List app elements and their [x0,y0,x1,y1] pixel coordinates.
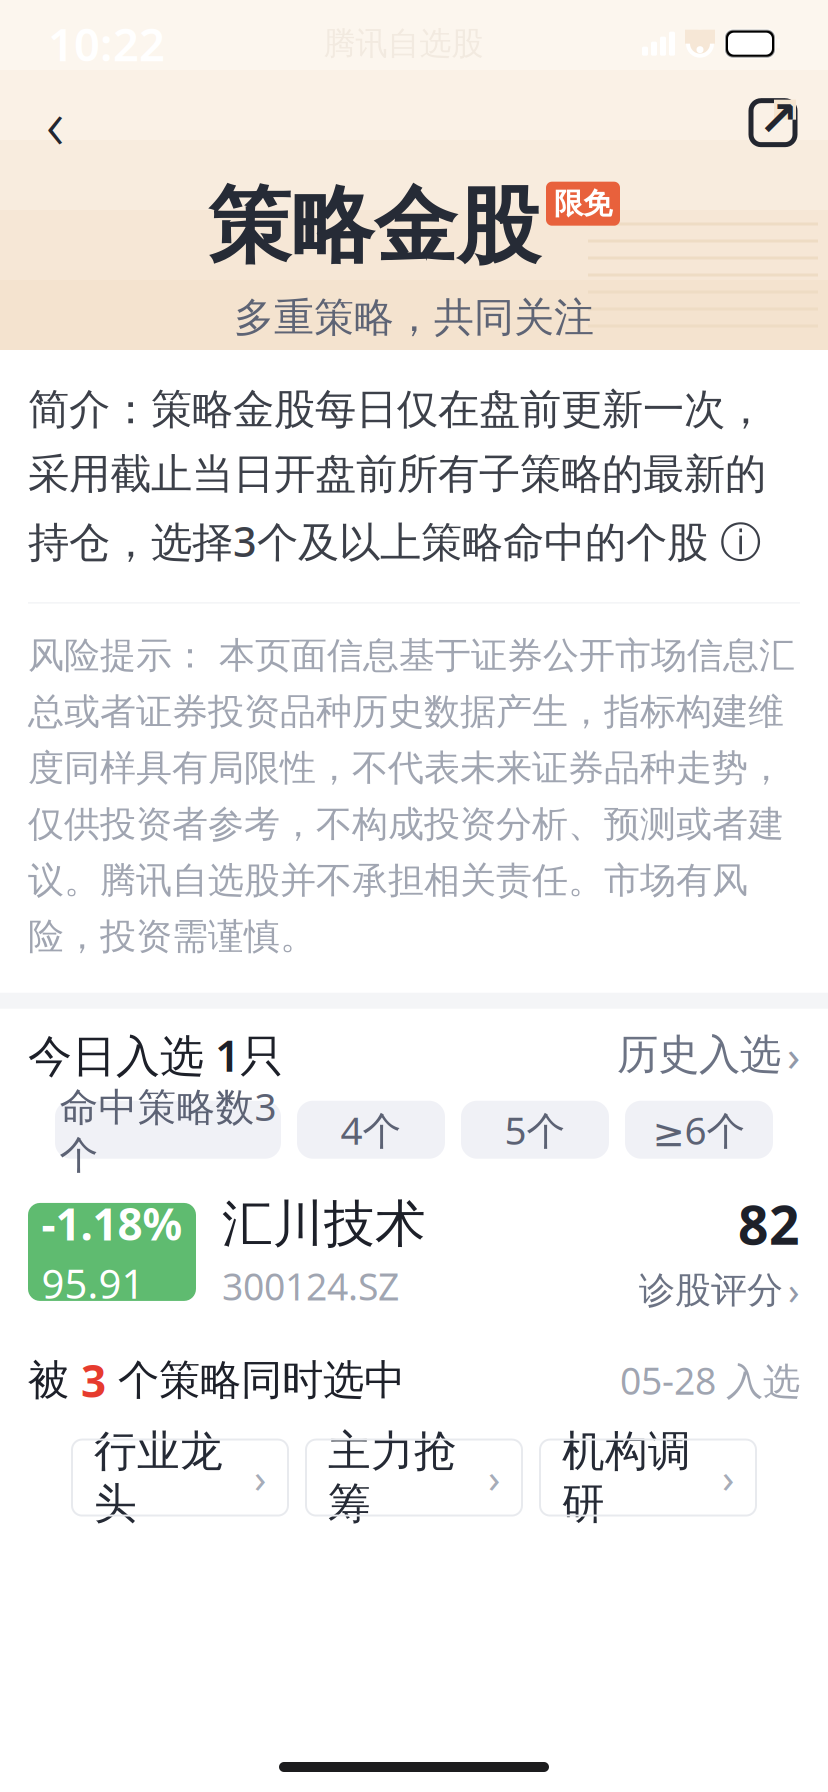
staticText: 汇川技术 [222,1193,426,1255]
staticText: 机构调研 [562,1425,691,1530]
staticText: › [788,1266,800,1315]
button[interactable]: 分享 [738,88,808,158]
staticText: 历史入选 [617,1029,781,1080]
staticText: ↗ [758,91,798,146]
staticText: 05-28 入选 [620,1356,800,1405]
staticText: 限免 [554,186,612,222]
staticText: 诊股评分 [639,1268,783,1312]
staticText: 82 [738,1189,800,1259]
staticText: 行业龙头 [94,1425,223,1530]
staticText: › [488,1451,500,1504]
staticText: 95.91 [41,1257,144,1310]
staticText: 今日入选 1只 [28,1025,284,1084]
button[interactable]: 5个 [461,1101,609,1159]
button[interactable]: 命中策略数3个 [55,1101,281,1159]
staticText: 个策略同时选中 [106,1355,405,1406]
staticText: 5个 [504,1104,565,1155]
staticText: 风险提示： 本页面信息基于证券公开市场信息汇总或者证券投资品种历史数据产生，指标… [28,633,795,959]
staticText: 简介：策略金股每日仅在盘前更新一次，采用截止当日开盘前所有子策略的最新的持仓，选… [28,384,766,568]
staticText: 被 [28,1355,81,1406]
button[interactable]: 返回 [20,88,90,158]
staticText: 3 [81,1351,106,1409]
staticText: 4个 [340,1104,401,1155]
staticText: 策略金股 [208,176,540,277]
staticText: ‹ [46,77,64,169]
staticText: -1.18% [41,1194,182,1253]
button[interactable]: 主力抢筹 [306,1440,522,1516]
staticText: › [722,1451,734,1504]
button[interactable]: ≥6个 [625,1101,773,1159]
staticText: 主力抢筹 [328,1425,457,1530]
button[interactable]: 4个 [297,1101,445,1159]
button[interactable]: 机构调研 [540,1440,756,1516]
button[interactable]: 行业龙头 [72,1440,288,1516]
staticText: 命中策略数3个 [59,1080,276,1179]
button[interactable]: -1.18% [0,1189,828,1315]
staticText: 多重策略，共同关注 [234,293,594,342]
staticText: 腾讯自选股 [323,24,483,63]
button[interactable]: 历史入选 [617,1018,800,1091]
staticText: 300124.SZ [222,1261,399,1311]
staticText: › [787,1026,800,1083]
staticText: 10:22 [48,14,165,74]
staticText: › [254,1451,266,1504]
staticText: ≥6个 [652,1104,745,1155]
